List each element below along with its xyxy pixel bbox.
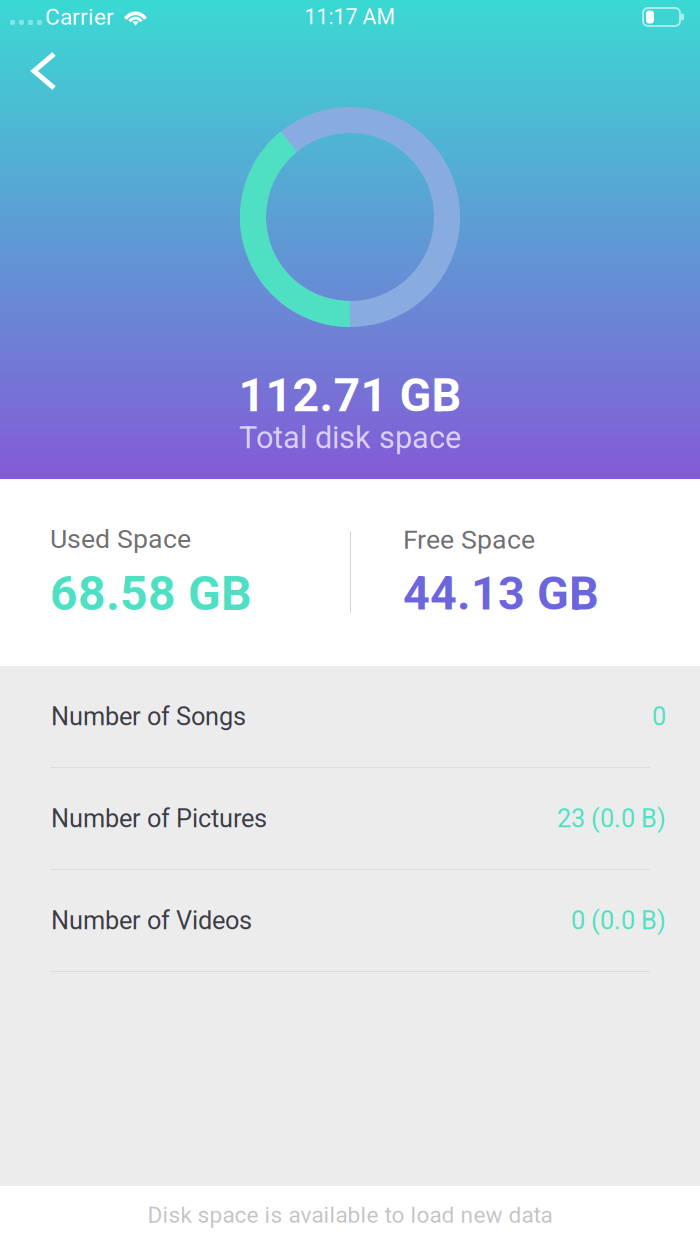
staticText: Number of Videos xyxy=(51,906,252,935)
staticText: 0 (0.0 B) xyxy=(571,906,666,935)
staticText: 112.71 GB xyxy=(238,368,461,423)
staticText: Used Space xyxy=(50,523,191,554)
staticText: Number of Songs xyxy=(51,702,246,731)
staticText: Total disk space xyxy=(239,420,461,456)
button[interactable]: Number of Pictures xyxy=(0,768,700,870)
staticText: 11:17 AM xyxy=(304,4,395,29)
button[interactable]: Number of Songs xyxy=(0,666,700,768)
staticText: 68.58 GB xyxy=(50,565,252,622)
staticText: 44.13 GB xyxy=(403,566,599,621)
button[interactable]: Back xyxy=(0,34,80,100)
staticText: Free Space xyxy=(403,524,535,555)
staticText: Number of Pictures xyxy=(51,804,267,833)
staticText: 23 (0.0 B) xyxy=(557,804,666,833)
button[interactable]: Number of Videos xyxy=(0,870,700,972)
staticText: Disk space is available to load new data xyxy=(147,1202,552,1228)
staticText: Carrier xyxy=(45,4,114,30)
staticText: 0 xyxy=(652,702,666,731)
